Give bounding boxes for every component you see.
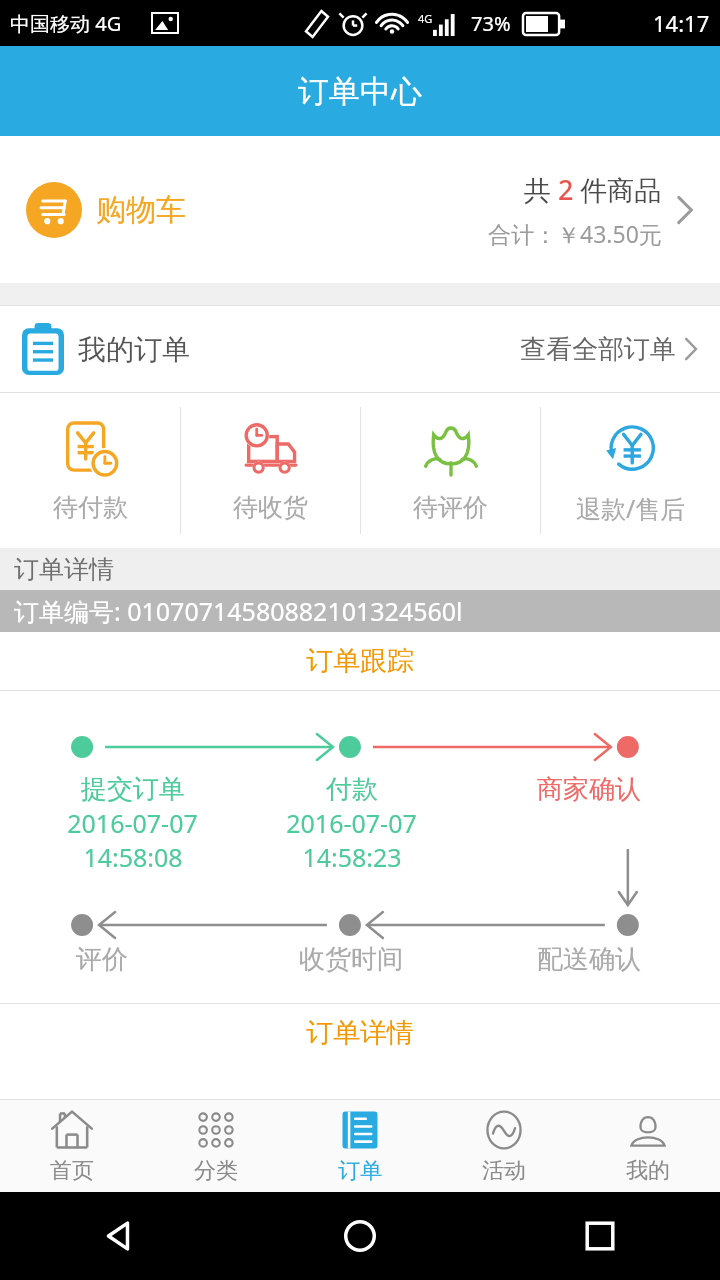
button[interactable]: 购物车 bbox=[0, 136, 720, 283]
staticText: 中国移动 4G bbox=[10, 10, 122, 37]
staticText: 付款 bbox=[326, 773, 378, 806]
button[interactable]: 订单详情 bbox=[0, 1004, 720, 1062]
button[interactable]: 我的 bbox=[576, 1100, 720, 1192]
staticText: 待评价 bbox=[413, 492, 488, 523]
staticText: 配送确认 bbox=[537, 943, 641, 976]
button[interactable]: 首页 bbox=[0, 1100, 144, 1192]
staticText: 收货时间 bbox=[299, 943, 403, 976]
staticText: 待收货 bbox=[233, 492, 308, 523]
button[interactable]: 待付款 bbox=[0, 393, 180, 548]
staticText: 评价 bbox=[76, 943, 128, 976]
staticText: 2016-07-07 bbox=[286, 806, 417, 840]
staticText: 14:58:23 bbox=[302, 840, 402, 874]
button[interactable]: 待收货 bbox=[181, 393, 360, 548]
staticText: 首页 bbox=[50, 1157, 94, 1185]
button[interactable]: 分类 bbox=[144, 1100, 288, 1192]
staticText: 订单详情 bbox=[14, 554, 114, 585]
staticText: 订单编号: 01070714580882101324560l bbox=[14, 594, 463, 628]
staticText: 14:17 bbox=[653, 8, 710, 38]
button[interactable]: 待评价 bbox=[361, 393, 540, 548]
staticText: 共 2 件商品 bbox=[524, 171, 662, 208]
staticText: 提交订单 bbox=[81, 773, 185, 806]
staticText: 待付款 bbox=[53, 492, 128, 523]
button[interactable]: 我的订单 bbox=[0, 306, 720, 392]
button[interactable]: Home bbox=[240, 1192, 480, 1280]
button[interactable]: 订单 bbox=[288, 1100, 432, 1192]
staticText: 订单中心 bbox=[298, 72, 422, 111]
staticText: 73% bbox=[471, 10, 511, 37]
staticText: 订单详情 bbox=[306, 1016, 414, 1050]
staticText: 分类 bbox=[194, 1157, 238, 1185]
staticText: 2016-07-07 bbox=[67, 806, 198, 840]
staticText: 订单 bbox=[338, 1157, 382, 1185]
staticText: 我的订单 bbox=[78, 332, 190, 367]
staticText: 查看全部订单 bbox=[520, 333, 676, 366]
staticText: 订单跟踪 bbox=[306, 644, 414, 678]
staticText: 商家确认 bbox=[537, 773, 641, 806]
staticText: 购物车 bbox=[96, 191, 186, 229]
button[interactable]: 退款/售后 bbox=[541, 393, 720, 548]
staticText: 退款/售后 bbox=[576, 491, 686, 525]
staticText: 4G bbox=[418, 11, 433, 26]
staticText: 活动 bbox=[482, 1157, 526, 1185]
staticText: 合计：￥43.50元 bbox=[488, 218, 662, 249]
button[interactable]: Recents bbox=[480, 1192, 720, 1280]
button[interactable]: 活动 bbox=[432, 1100, 576, 1192]
staticText: 我的 bbox=[626, 1157, 670, 1185]
button[interactable]: Back bbox=[0, 1192, 240, 1280]
staticText: 14:58:08 bbox=[83, 840, 183, 874]
